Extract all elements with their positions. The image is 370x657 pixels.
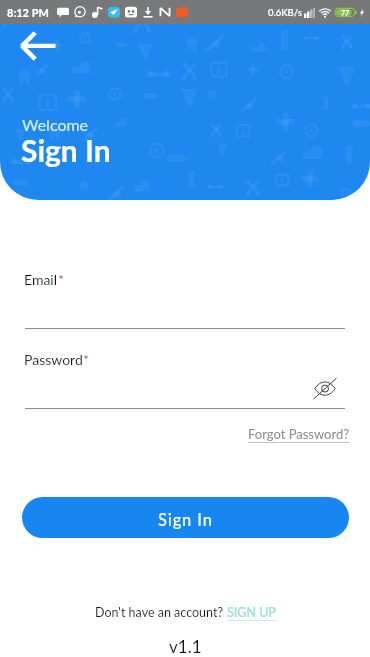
staticText: Password [24,351,83,368]
staticText: * [58,271,64,288]
staticText: Welcome [22,115,89,134]
button[interactable]: Forgot Password? [248,426,350,442]
staticText: v1.1 [169,636,202,656]
button[interactable]: SIGN UP [227,605,276,620]
staticText: * [83,351,89,368]
staticText: 77 [341,9,350,17]
staticText: Email [24,271,58,288]
staticText: Forgot Password? [248,426,350,442]
staticText: 8:12 PM [7,6,49,19]
staticText: SIGN UP [227,605,276,620]
button[interactable]: Back [14,26,60,66]
button[interactable]: Show password [309,376,341,400]
button[interactable]: Sign In [22,497,349,538]
staticText: Don't have an account? [95,605,227,620]
staticText: 0.6KB/s [268,7,302,18]
staticText: Sign In [21,132,111,168]
staticText: Sign In [158,510,213,530]
